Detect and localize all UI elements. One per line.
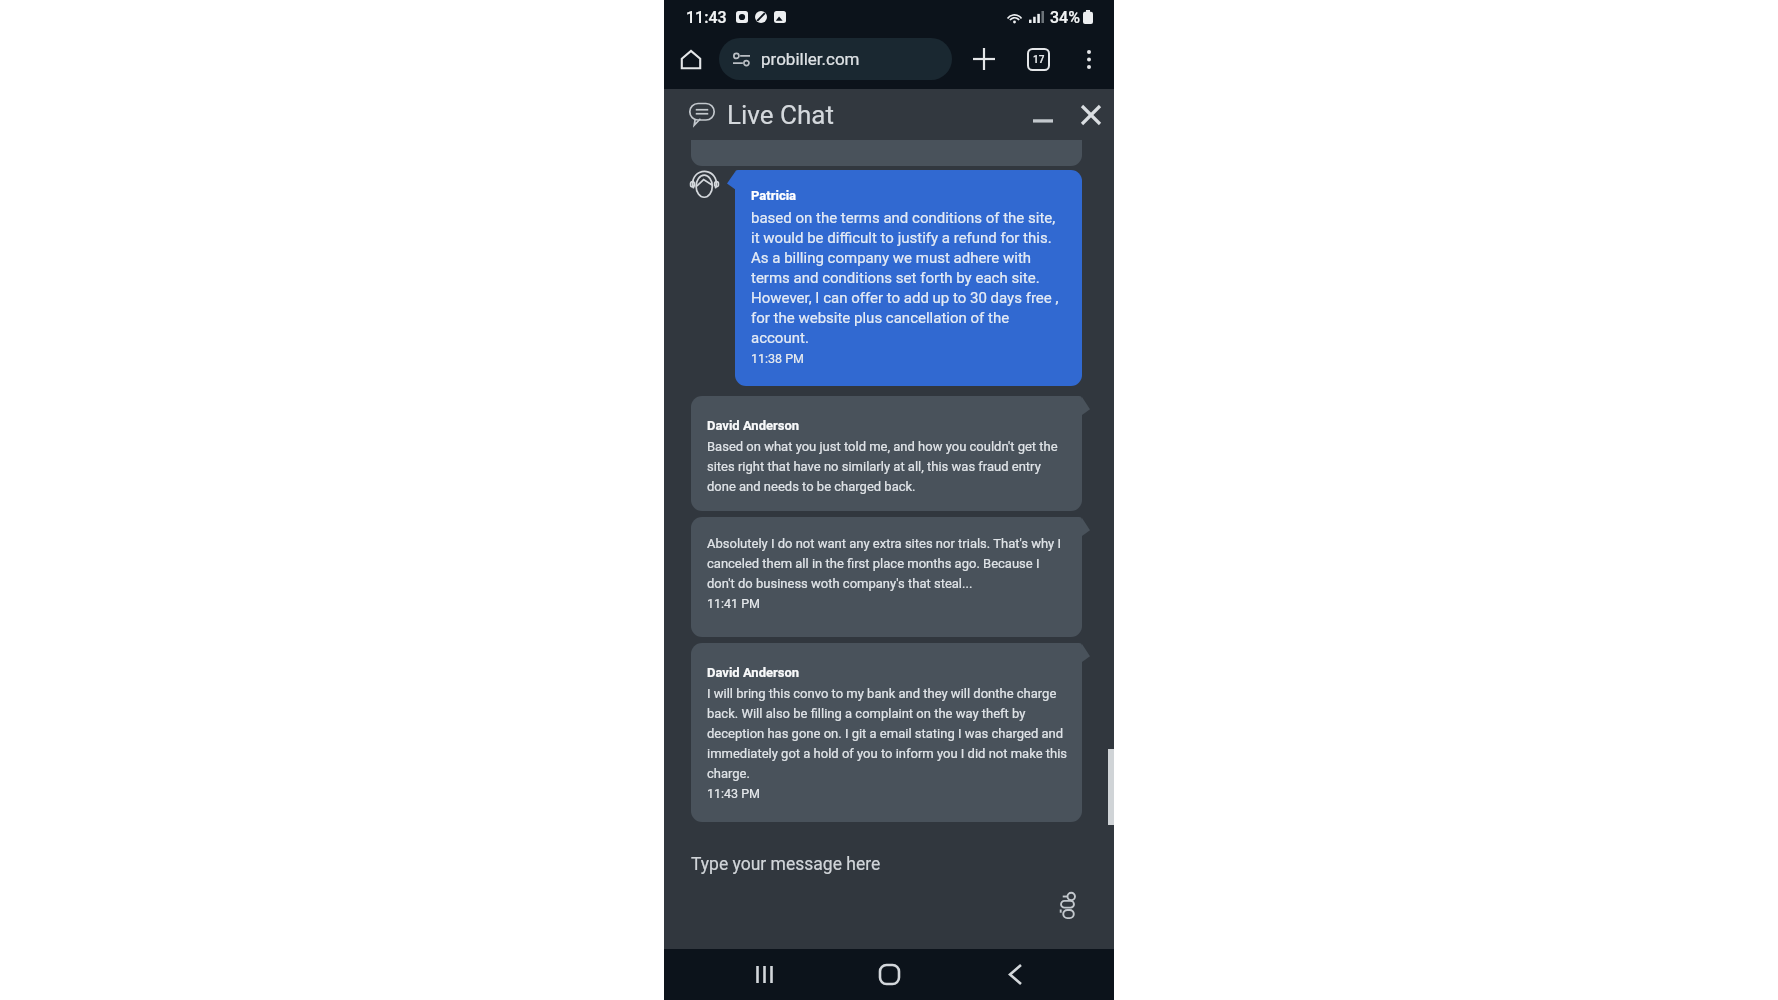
staticText: 34% <box>1050 8 1080 27</box>
staticText: 11:38 PM <box>751 347 805 367</box>
button[interactable]: Minimize <box>1024 96 1062 134</box>
staticText: Absolutely I do not want any extra sites… <box>707 532 1061 592</box>
staticText: Live Chat <box>727 100 834 130</box>
staticText: Patricia <box>751 187 797 204</box>
staticText: based on the terms and conditions of the… <box>751 207 1059 347</box>
button[interactable]: probiller.com <box>719 38 952 80</box>
staticText: 11:41 PM <box>707 592 761 612</box>
staticText: Type your message here <box>691 854 881 875</box>
button[interactable]: More options <box>1070 40 1108 78</box>
button[interactable]: Patricia <box>735 170 1082 386</box>
staticText: David Anderson <box>707 658 800 682</box>
button[interactable]: Close <box>1072 96 1110 134</box>
staticText: probiller.com <box>761 49 860 69</box>
button[interactable]: David Anderson <box>691 643 1082 822</box>
button[interactable]: Absolutely I do not want any extra sites… <box>691 517 1082 637</box>
staticText: Based on what you just told me, and how … <box>707 435 1058 495</box>
staticText: 17 <box>1033 54 1045 66</box>
staticText: I will bring this convo to my bank and t… <box>707 682 1068 782</box>
button[interactable]: New tab <box>964 39 1004 79</box>
staticText: David Anderson <box>707 411 800 435</box>
button[interactable]: Recent apps <box>738 949 790 1000</box>
button[interactable]: Home <box>672 40 710 78</box>
button[interactable]: Home <box>863 949 915 1000</box>
button[interactable]: David Anderson <box>691 396 1082 511</box>
button[interactable]: Back <box>989 949 1041 1000</box>
staticText: 11:43 PM <box>707 782 761 802</box>
button[interactable]: Tabs <box>1018 39 1058 79</box>
button[interactable]: Attach <box>1051 890 1083 922</box>
staticText: 11:43 <box>686 8 727 27</box>
